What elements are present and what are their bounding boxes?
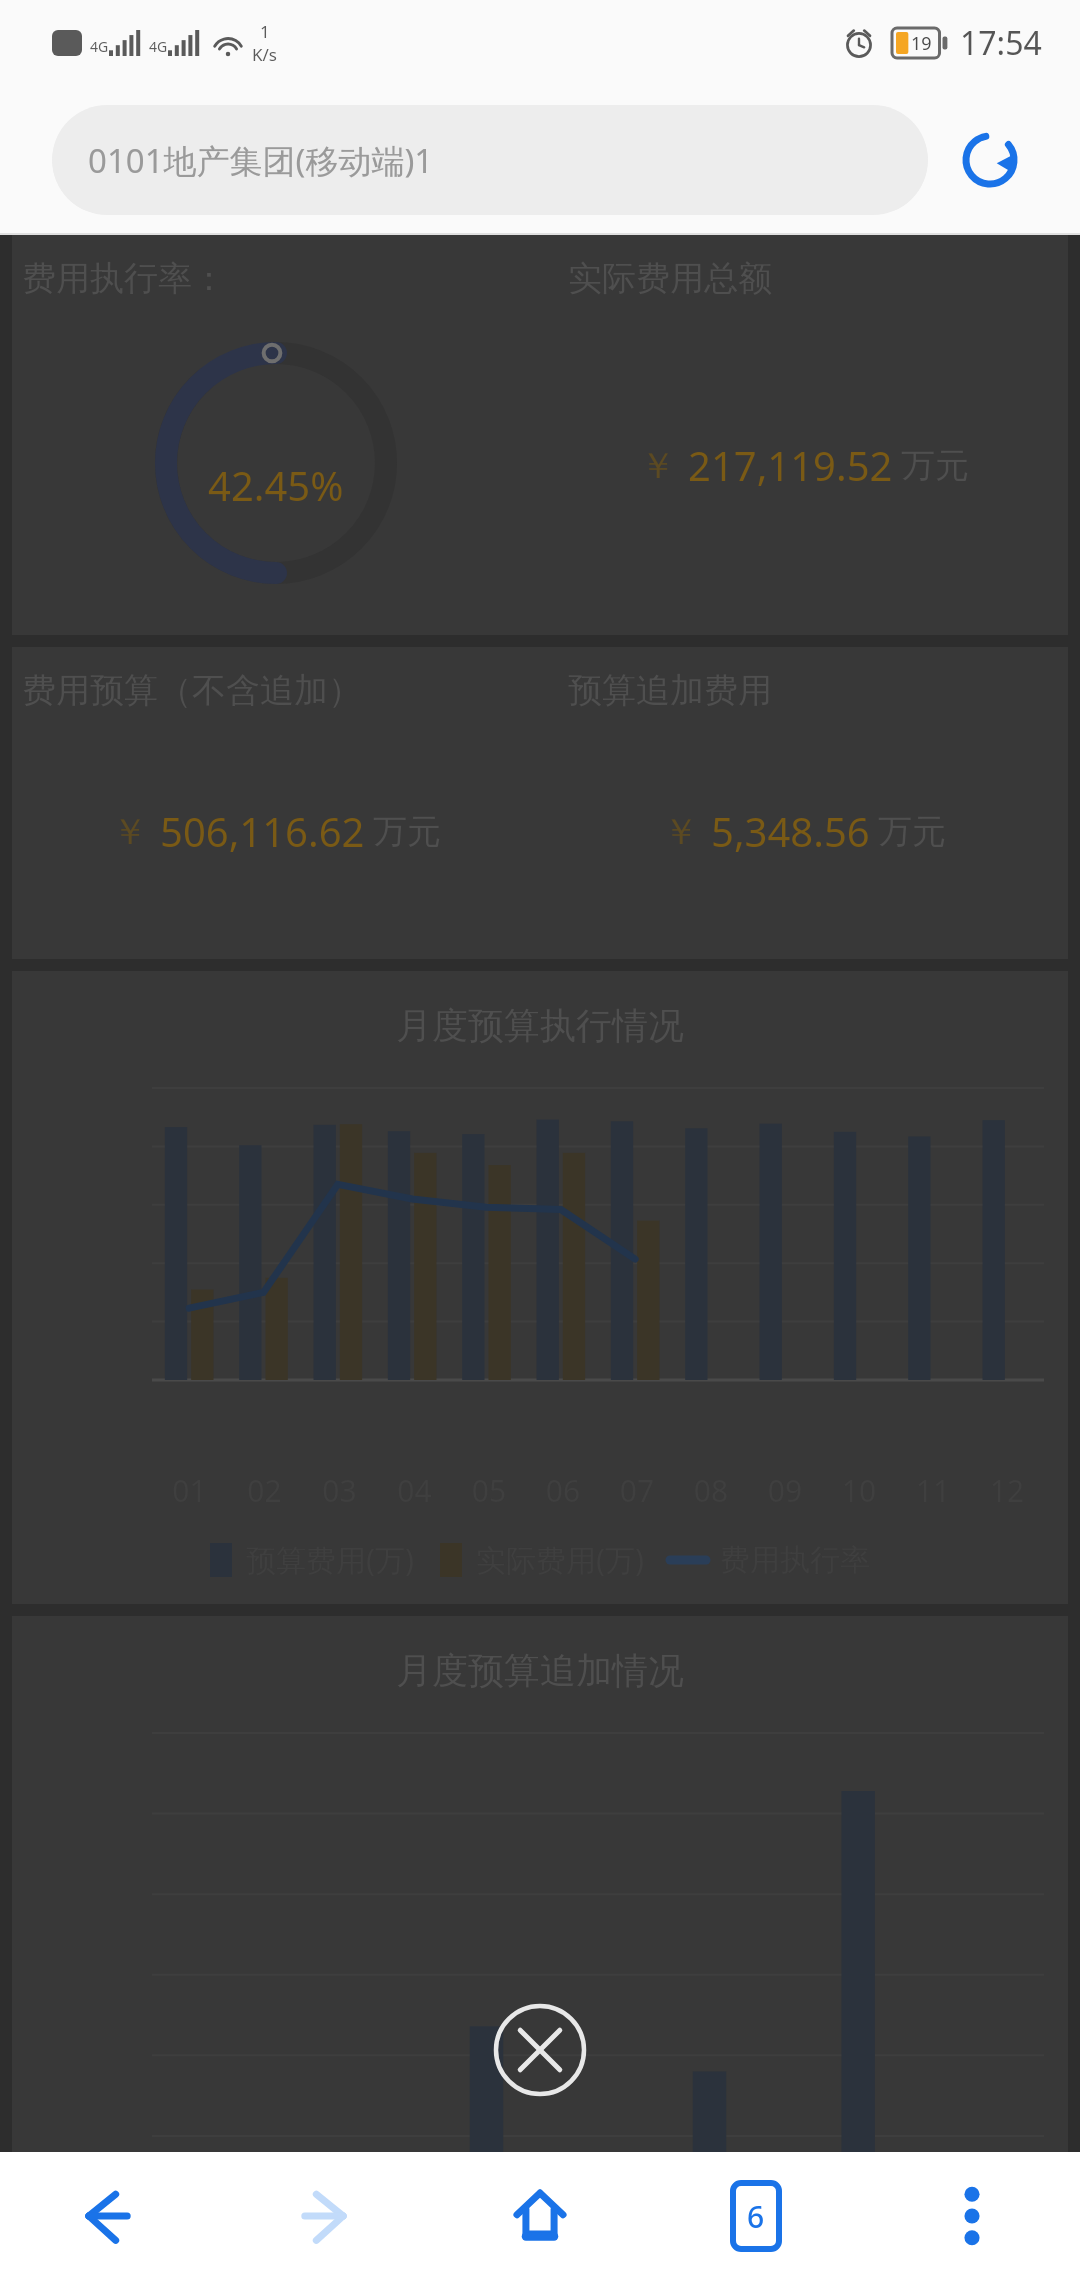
staticText: 万元 — [901, 444, 969, 487]
staticText: 5,348.56 — [711, 804, 870, 858]
staticText: 6 — [747, 2196, 765, 2237]
staticText: ￥ — [663, 809, 699, 854]
staticText: 月度预算执行情况 — [12, 1003, 1068, 1048]
staticText: 217,119.52 — [688, 438, 893, 492]
staticText: 42.45% — [208, 458, 344, 512]
staticText: 17:54 — [960, 21, 1042, 65]
button[interactable]: Home — [432, 2152, 648, 2280]
staticText: 4G — [90, 37, 109, 56]
staticText: 月度预算追加情况 — [12, 1648, 1068, 1693]
staticText: K/s — [252, 43, 277, 66]
staticText: 预算追加费用 — [568, 669, 772, 712]
button[interactable]: Forward — [216, 2152, 432, 2280]
button[interactable]: Back — [0, 2152, 216, 2280]
button[interactable]: Close — [492, 2002, 588, 2098]
staticText: ￥ — [112, 809, 148, 854]
staticText: 4G — [149, 37, 168, 56]
button[interactable]: 0101地产集团(移动端)1 — [52, 105, 928, 215]
staticText: 0101地产集团(移动端)1 — [88, 138, 434, 183]
staticText: 506,116.62 — [160, 804, 365, 858]
button[interactable]: More — [864, 2152, 1080, 2280]
staticText: 万元 — [373, 810, 441, 853]
staticText: 费用执行率： — [22, 257, 226, 300]
staticText: 万元 — [878, 810, 946, 853]
button[interactable]: Refresh — [952, 122, 1028, 198]
staticText: ￥ — [640, 443, 676, 488]
staticText: 19 — [911, 31, 932, 56]
staticText: 1 — [260, 20, 270, 43]
button[interactable]: Tabs — [648, 2152, 864, 2280]
staticText: 费用预算（不含追加） — [22, 669, 362, 712]
staticText: 实际费用总额 — [568, 257, 772, 300]
